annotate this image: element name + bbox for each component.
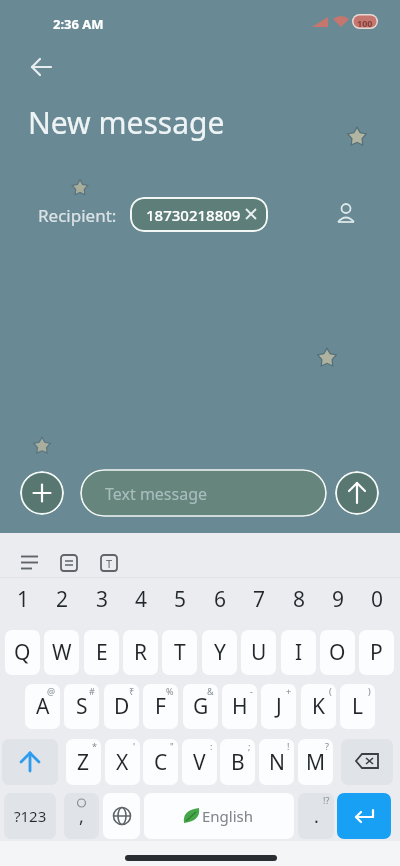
button[interactable]: W (44, 630, 79, 675)
staticText: 6 (214, 585, 227, 614)
button[interactable] (20, 471, 64, 515)
staticText: + (286, 685, 292, 697)
button[interactable] (58, 552, 80, 574)
button[interactable]: ?123 (4, 793, 56, 839)
button[interactable] (341, 739, 393, 785)
button[interactable] (28, 53, 56, 81)
button[interactable]: V (182, 739, 217, 785)
staticText: S (76, 692, 88, 721)
staticText: K (312, 692, 325, 721)
staticText: New message (28, 102, 225, 143)
button[interactable]: . (298, 793, 334, 839)
staticText: ₹ (129, 685, 135, 697)
button[interactable] (335, 471, 379, 515)
button[interactable]: J (261, 684, 296, 729)
staticText: 4 (135, 585, 148, 614)
button[interactable]: B (220, 739, 255, 785)
staticText: !? (323, 794, 330, 806)
staticText: E (96, 638, 108, 667)
button[interactable]: O (320, 630, 355, 675)
staticText: 7 (253, 585, 266, 614)
staticText: - (250, 685, 253, 697)
button[interactable]: I (281, 630, 316, 675)
button[interactable]: E (84, 630, 119, 675)
staticText: X (116, 748, 129, 777)
button[interactable]: G (183, 684, 218, 729)
staticText: 8 (293, 585, 306, 614)
button[interactable]: K (301, 684, 336, 729)
staticText: ?123 (14, 806, 47, 826)
staticText: C (154, 748, 168, 777)
staticText: 18730218809 (146, 205, 241, 225)
staticText: Q (14, 638, 31, 667)
button[interactable]: C (143, 739, 178, 785)
button[interactable]: X (105, 739, 140, 785)
staticText: 100 (357, 17, 373, 29)
button[interactable] (103, 793, 140, 839)
staticText: ; (248, 740, 251, 752)
button[interactable]: 9 (321, 584, 355, 614)
button[interactable] (18, 552, 40, 574)
staticText: ' (133, 740, 136, 752)
staticText: Text message (105, 483, 208, 505)
staticText: D (114, 692, 130, 721)
staticText: A (36, 692, 50, 721)
button[interactable]: 2 (45, 584, 79, 614)
button[interactable]: English (144, 793, 294, 839)
button[interactable]: , (64, 793, 99, 839)
button[interactable]: F (143, 684, 178, 729)
button[interactable]: 0 (360, 584, 394, 614)
button[interactable]: 3 (85, 584, 119, 614)
button[interactable]: Y (202, 630, 237, 675)
staticText: Z (77, 748, 90, 777)
button[interactable]: M (298, 739, 333, 785)
button[interactable]: 4 (124, 584, 158, 614)
button[interactable]: 8 (282, 584, 316, 614)
button[interactable]: 6 (203, 584, 237, 614)
button[interactable]: Text message (80, 469, 327, 517)
button[interactable]: P (359, 630, 394, 675)
staticText: 1 (17, 585, 30, 614)
button[interactable]: S (64, 684, 99, 729)
button[interactable]: N (259, 739, 294, 785)
staticText: Recipient: (38, 204, 117, 227)
staticText: 5 (174, 585, 187, 614)
button[interactable]: Z (66, 739, 101, 785)
staticText: B (231, 748, 245, 777)
button[interactable]: D (104, 684, 139, 729)
button[interactable]: A (25, 684, 60, 729)
staticText: 9 (332, 585, 345, 614)
button[interactable]: R (123, 630, 158, 675)
button[interactable] (2, 739, 58, 785)
button[interactable] (334, 202, 358, 226)
staticText: Y (214, 638, 226, 667)
button[interactable]: 7 (242, 584, 276, 614)
staticText: : (210, 740, 213, 752)
staticText: J (276, 692, 282, 721)
button[interactable] (337, 793, 391, 839)
staticText: 2:36 AM (53, 15, 104, 33)
staticText: F (155, 692, 166, 721)
button[interactable]: T (98, 552, 120, 574)
staticText: 2 (56, 585, 69, 614)
button[interactable]: U (241, 630, 276, 675)
button[interactable]: 5 (163, 584, 197, 614)
staticText: T (106, 556, 113, 571)
staticText: P (370, 638, 383, 667)
button[interactable]: Q (5, 630, 40, 675)
staticText: V (193, 748, 206, 777)
button[interactable]: 18730218809 (130, 197, 268, 232)
staticText: 3 (96, 585, 109, 614)
staticText: U (251, 638, 267, 667)
button[interactable]: 1 (6, 584, 40, 614)
staticText: & (207, 685, 214, 697)
staticText: T (174, 638, 186, 667)
staticText: , (79, 804, 84, 829)
button[interactable]: T (162, 630, 197, 675)
staticText: English (202, 806, 254, 826)
staticText: * (92, 740, 97, 752)
button[interactable]: L (340, 684, 375, 729)
staticText: " (170, 740, 174, 752)
staticText: @ (47, 685, 56, 697)
button[interactable]: H (222, 684, 257, 729)
